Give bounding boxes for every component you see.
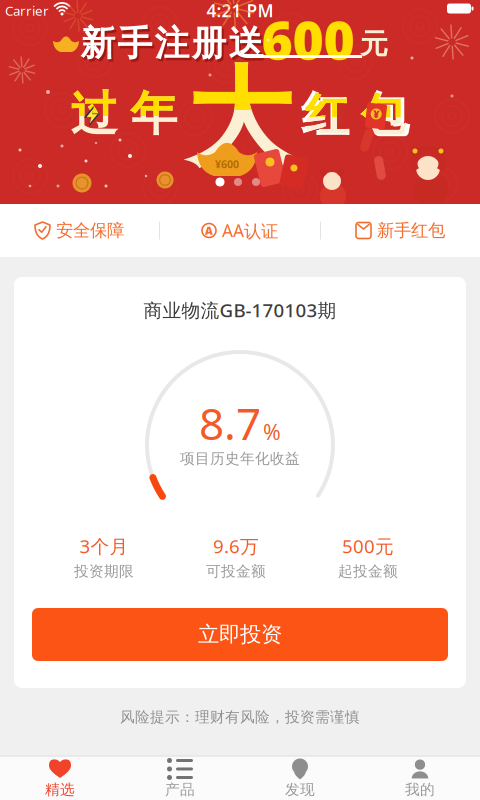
staticText: 发现 [285,780,315,798]
staticText: 投资期限 [74,562,134,580]
staticText: 元 [360,27,388,61]
button[interactable]: 新手红包 [321,204,480,257]
staticText: 红包 [305,88,405,142]
staticText: 9.6万 [213,534,259,558]
staticText: 项目历史年化收益 [180,449,300,467]
staticText: 精选 [45,780,75,798]
staticText: 大 [186,53,293,184]
staticText: ¥600 [215,157,239,171]
staticText: Carrier [5,2,49,19]
button[interactable]: 发现 [255,757,345,799]
staticText: 4:21 PM [206,0,273,22]
button[interactable]: 精选 [15,757,105,799]
button[interactable]: 立即投资 [32,608,448,661]
staticText: 过年 [70,85,177,143]
staticText: 可投金额 [206,562,266,580]
staticText: 红包 [305,88,405,142]
button[interactable]: 安全保障 [0,204,159,257]
staticText: 新手注册送 [80,22,263,65]
staticText: 红包 [301,85,409,144]
staticText: 安全保障 [56,220,124,241]
staticText: 3个月 [79,534,128,558]
staticText: 600 [261,4,354,74]
staticText: AA认证 [222,219,278,242]
staticText: 8.7 [199,394,261,452]
staticText: 大 [186,53,293,184]
staticText: 商业物流GB-170103期 [143,298,336,322]
staticText: 立即投资 [198,621,282,648]
staticText: 过年 [70,85,177,143]
button[interactable]: 产品 [135,757,225,799]
button[interactable]: 我的 [375,757,465,799]
staticText: % [263,418,281,446]
staticText: A [205,223,213,238]
staticText: 风险提示：理财有风险，投资需谨慎 [120,708,360,726]
staticText: ¥ [373,107,379,121]
staticText: 新手红包 [377,220,445,241]
staticText: 起投金额 [338,562,398,580]
staticText: 500元 [342,534,394,558]
button[interactable]: A [160,204,320,257]
staticText: 我的 [405,780,435,798]
staticText: 新手注册送 [82,25,265,67]
staticText: 产品 [165,780,195,798]
